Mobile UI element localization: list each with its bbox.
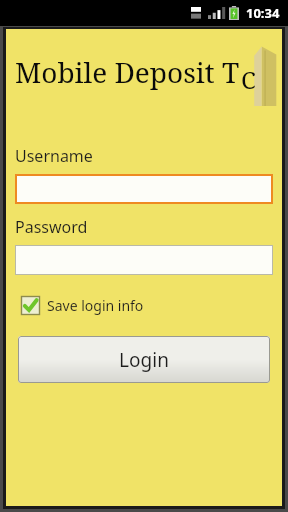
staticText: Username	[15, 145, 93, 167]
staticText: Login	[119, 347, 169, 373]
staticText: Save login info	[47, 296, 144, 315]
staticText: Mobile Deposit T	[15, 53, 240, 91]
staticText: 10:34	[246, 4, 280, 22]
button[interactable]: Password input	[15, 245, 273, 275]
button[interactable]: Login	[18, 336, 270, 383]
staticText: Password	[15, 216, 88, 238]
button[interactable]: Save login info	[19, 293, 146, 318]
staticText: C	[241, 63, 256, 96]
button[interactable]: Username input	[15, 174, 273, 204]
